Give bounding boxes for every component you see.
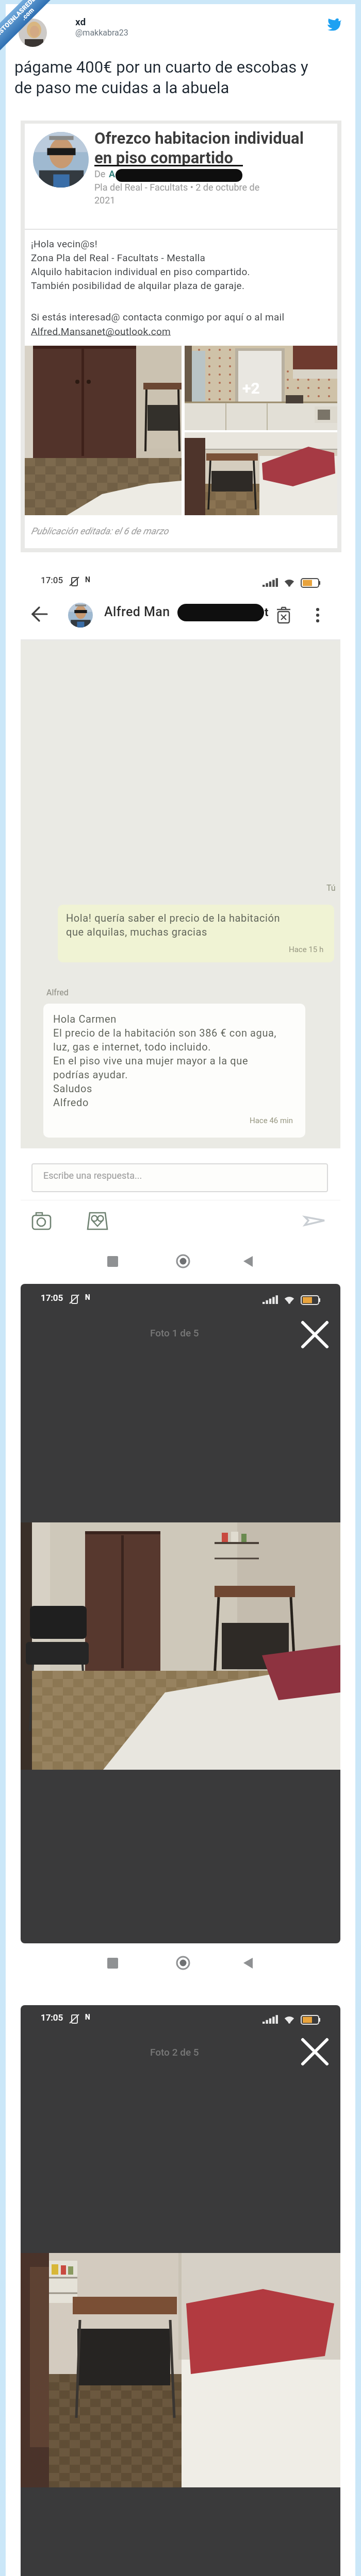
staticText: que alquilas, muchas gracias xyxy=(66,926,207,938)
staticText: Zona Pla del Real - Facultats - Mestalla xyxy=(31,252,206,263)
staticText: ¡Hola vecin@s! xyxy=(31,238,97,249)
button[interactable] xyxy=(274,606,294,624)
staticText: @makkabra23 xyxy=(75,28,128,38)
staticText: Alquilo habitacion individual en piso co… xyxy=(31,266,250,277)
staticText: Si estás interesad@ contacta conmigo por… xyxy=(31,311,285,323)
staticText: Alfred Man xyxy=(104,604,170,619)
staticText: +2 xyxy=(242,379,260,397)
staticText: También posibilidad de alquilar plaza de… xyxy=(31,280,245,291)
staticText: Saludos xyxy=(53,1082,92,1094)
staticText: 17:05 xyxy=(41,2012,63,2023)
staticText: Foto 1 de 5 xyxy=(150,1327,199,1338)
staticText: N xyxy=(85,1293,90,1301)
button[interactable] xyxy=(309,605,326,625)
staticText: 17:05 xyxy=(41,575,63,585)
staticText: Foto 2 de 5 xyxy=(150,2046,199,2058)
staticText: podrías ayudar. xyxy=(53,1069,128,1080)
staticText: Alfred xyxy=(46,988,69,997)
staticText: 17:05 xyxy=(41,1293,63,1303)
button[interactable] xyxy=(302,1209,327,1232)
staticText: Tú xyxy=(326,883,336,893)
staticText: De xyxy=(94,168,108,179)
staticText: t xyxy=(265,606,269,619)
staticText: A xyxy=(109,168,116,179)
button[interactable] xyxy=(84,1210,111,1232)
staticText: xd xyxy=(75,16,86,27)
staticText: Hola Carmen xyxy=(53,1013,117,1025)
button[interactable] xyxy=(31,1163,328,1192)
staticText: Alfred.Mansanet@outlook.com xyxy=(31,326,171,337)
staticText: Publicación editada: el 6 de marzo xyxy=(31,526,169,536)
staticText: 2021 xyxy=(94,195,116,206)
staticText: en piso compartido xyxy=(94,148,234,167)
button[interactable] xyxy=(299,1319,331,1351)
staticText: VISTOENLASREDES .com xyxy=(0,0,44,44)
button[interactable] xyxy=(29,606,51,622)
staticText: N xyxy=(85,575,90,584)
staticText: Alfredo xyxy=(53,1096,89,1108)
button[interactable] xyxy=(28,1210,55,1232)
staticText: N xyxy=(85,2013,90,2021)
staticText: Hola! quería saber el precio de la habit… xyxy=(66,912,281,924)
button[interactable] xyxy=(299,2036,331,2068)
staticText: Hace 15 h xyxy=(289,945,324,954)
staticText: Escribe una respuesta... xyxy=(43,1170,142,1181)
staticText: Hace 46 min xyxy=(250,1116,293,1125)
staticText: de paso me cuidas a la abuela xyxy=(14,78,229,97)
staticText: págame 400€ por un cuarto de escobas y xyxy=(14,58,308,76)
staticText: En el piso vive una mujer mayor a la que xyxy=(53,1055,249,1066)
staticText: Pla del Real - Facultats • 2 de octubre … xyxy=(94,182,260,193)
staticText: luz, gas e internet, todo incluido. xyxy=(53,1041,211,1053)
staticText: Ofrezco habitacion individual xyxy=(94,129,304,147)
staticText: El precio de la habitación son 386 € con… xyxy=(53,1027,277,1039)
